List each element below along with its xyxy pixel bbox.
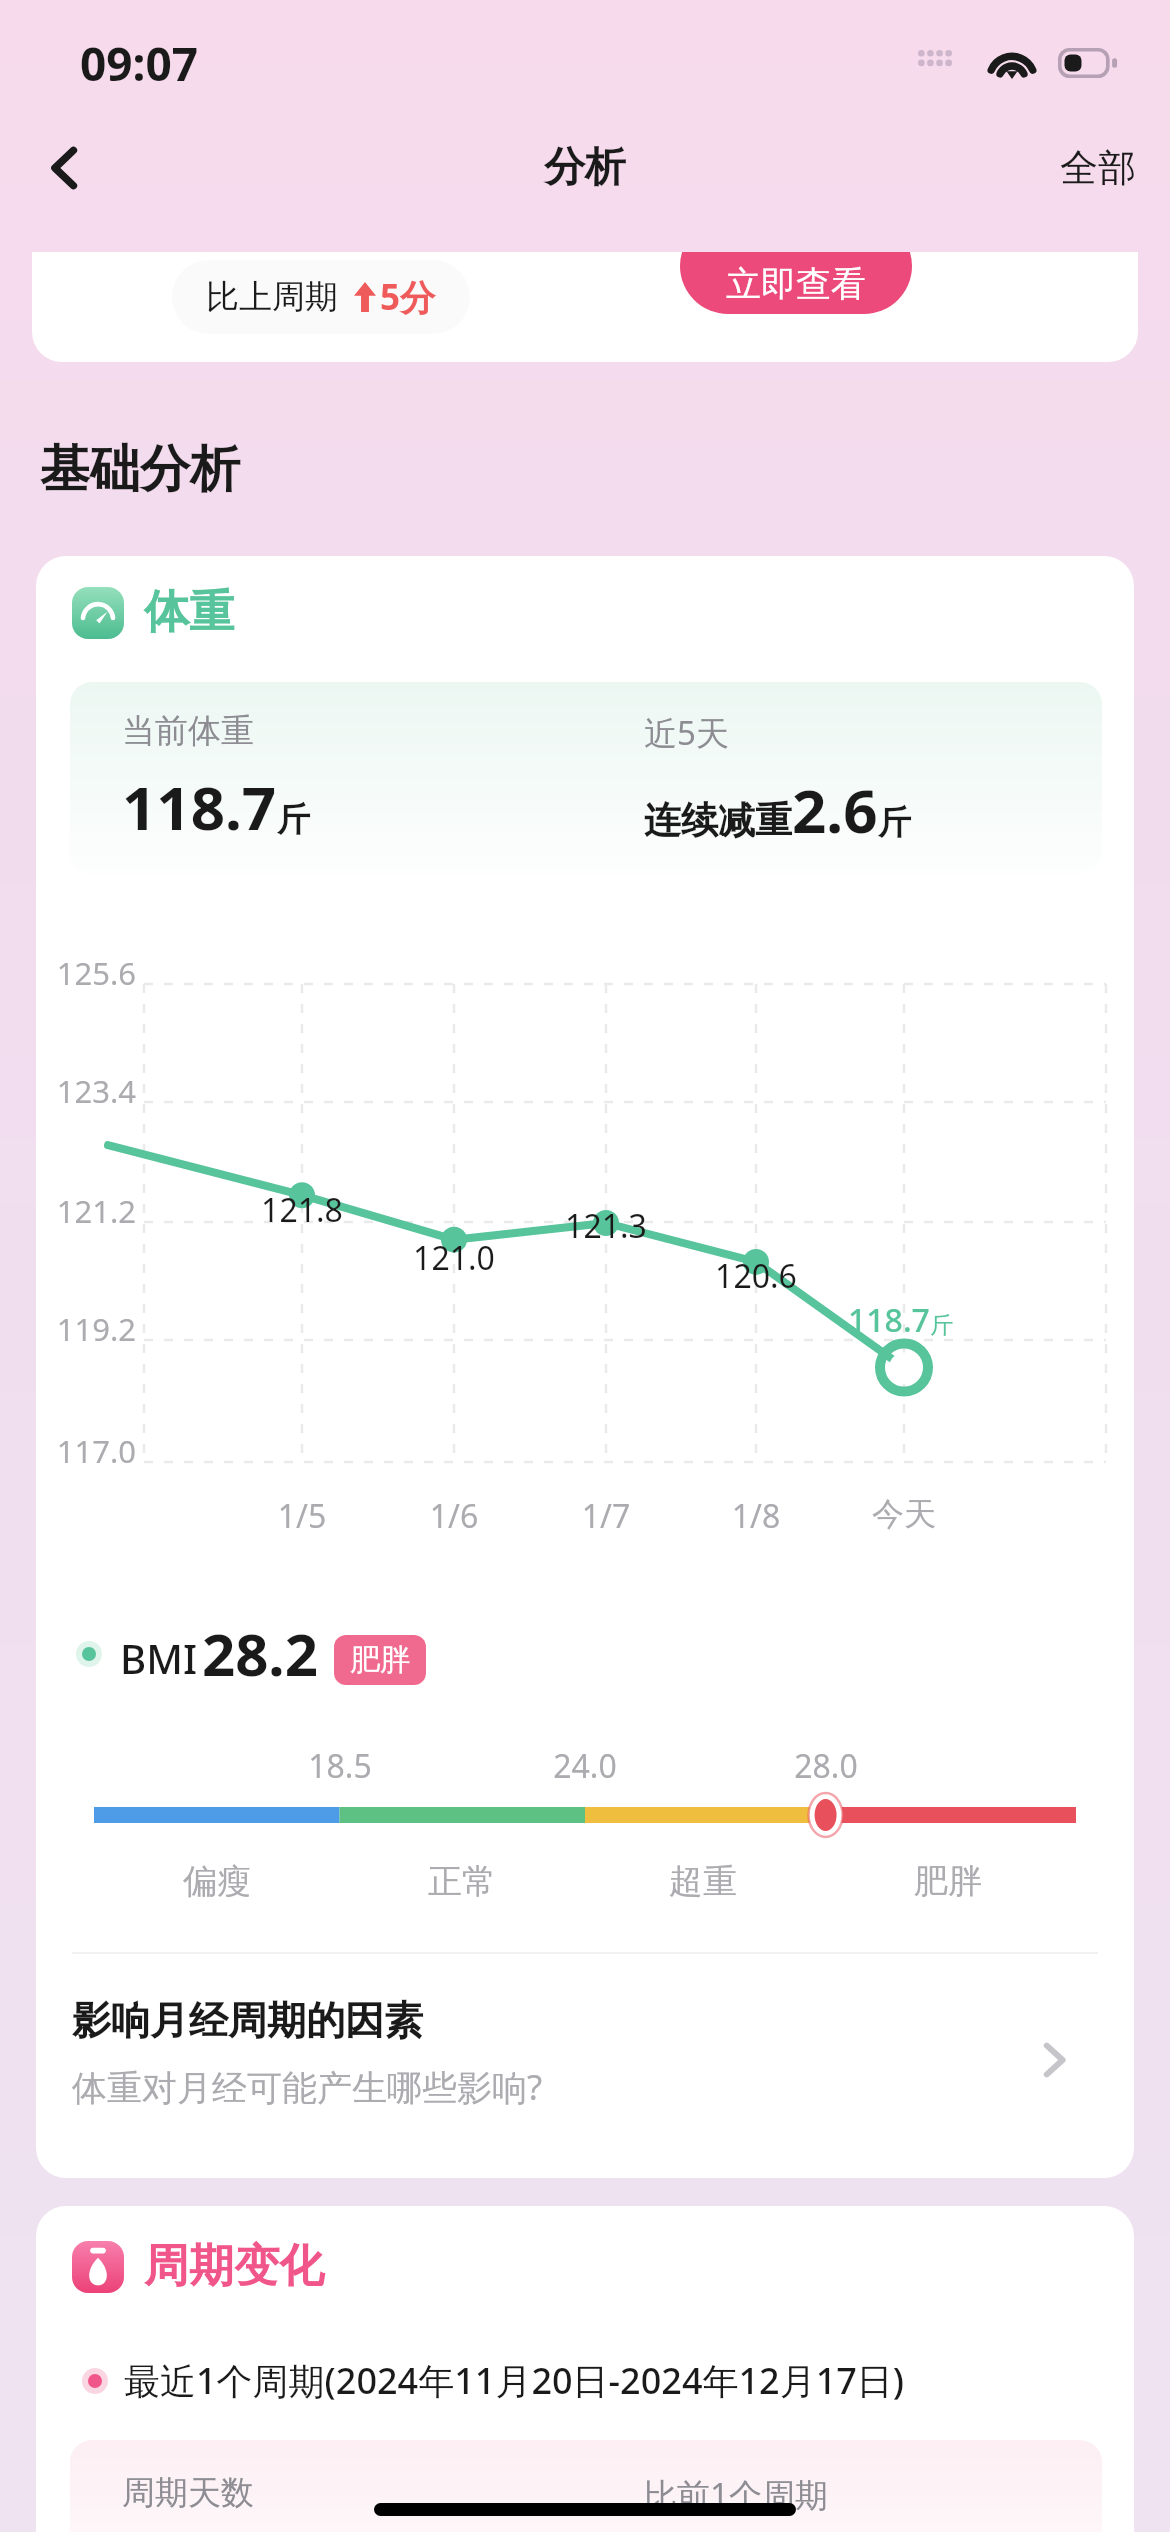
staticText: 比前1个周期: [644, 2472, 828, 2517]
staticText: 最近1个周期(2024年11月20日-2024年12月17日): [124, 2356, 905, 2405]
staticText: 117.0: [36, 1430, 136, 1472]
staticText: 121.0: [400, 1236, 508, 1280]
button[interactable]: 影响月经周期的因素: [36, 1954, 1134, 2166]
staticText: 斤: [930, 1311, 953, 1340]
staticText: 偏瘦: [147, 1860, 287, 1903]
staticText: 体重对月经可能产生哪些影响?: [72, 2063, 543, 2111]
staticText: 影响月经周期的因素: [72, 1996, 423, 2045]
staticText: 基础分析: [40, 438, 240, 501]
staticText: 分析: [544, 142, 626, 194]
staticText: 今天: [844, 1494, 964, 1534]
staticText: 斤: [878, 802, 911, 844]
staticText: 比上周期: [206, 276, 338, 318]
staticText: 125.6: [36, 952, 136, 994]
button[interactable]: 立即查看: [680, 252, 912, 314]
staticText: 1/6: [394, 1494, 514, 1538]
staticText: 连续减重: [644, 797, 792, 844]
staticText: 118.7: [122, 766, 277, 848]
staticText: 2.6: [792, 769, 878, 851]
staticText: 正常: [392, 1860, 532, 1903]
staticText: 周期变化: [144, 2238, 324, 2295]
staticText: 28.0: [766, 1744, 886, 1788]
staticText: 1/7: [546, 1494, 666, 1538]
staticText: 肥胖: [878, 1860, 1018, 1903]
button[interactable]: Back: [22, 125, 108, 211]
staticText: 120.6: [702, 1254, 810, 1298]
staticText: 近5天: [644, 710, 729, 755]
staticText: 123.4: [36, 1070, 136, 1112]
staticText: 28.2: [202, 1614, 318, 1693]
staticText: 24.0: [525, 1744, 645, 1788]
staticText: 立即查看: [726, 262, 866, 306]
staticText: 121.8: [248, 1188, 356, 1232]
staticText: 118.7: [848, 1298, 930, 1342]
staticText: 周期天数: [122, 2472, 254, 2514]
staticText: 121.2: [36, 1190, 136, 1232]
staticText: 斤: [277, 799, 310, 841]
staticText: 1/5: [242, 1494, 362, 1538]
staticText: 121.3: [552, 1204, 660, 1248]
staticText: 09:07: [80, 32, 199, 95]
staticText: BMI: [120, 1631, 198, 1685]
staticText: 体重: [144, 584, 234, 641]
staticText: 5分: [380, 273, 436, 321]
staticText: 当前体重: [122, 710, 254, 752]
staticText: 超重: [633, 1860, 773, 1903]
staticText: 119.2: [36, 1308, 136, 1350]
staticText: 肥胖: [350, 1641, 410, 1679]
staticText: 1/8: [696, 1494, 816, 1538]
staticText: 18.5: [280, 1744, 400, 1788]
button[interactable]: 全部: [1060, 144, 1136, 192]
button[interactable]: 比上周期: [32, 252, 1138, 362]
